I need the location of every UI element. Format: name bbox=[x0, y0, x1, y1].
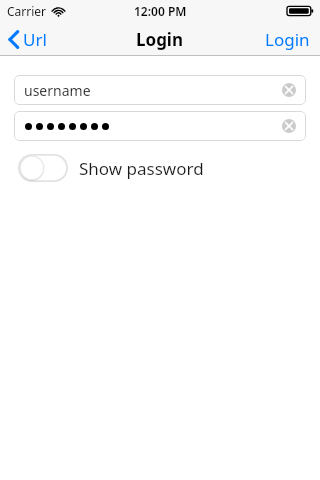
button[interactable]: Login bbox=[255, 22, 320, 56]
button[interactable]: Clear text bbox=[14, 111, 306, 141]
staticText: Show password bbox=[79, 157, 204, 180]
button[interactable]: Clear text bbox=[278, 115, 300, 137]
staticText: 12:00 PM bbox=[134, 3, 187, 19]
button[interactable]: Show password toggle bbox=[0, 152, 320, 184]
staticText: Url bbox=[23, 28, 47, 51]
staticText: Login bbox=[265, 28, 310, 51]
staticText: Carrier bbox=[7, 3, 47, 19]
button[interactable]: Clear text bbox=[278, 79, 300, 101]
staticText: username bbox=[24, 81, 91, 100]
staticText: Login bbox=[136, 28, 184, 51]
button[interactable]: Url bbox=[0, 22, 57, 56]
button[interactable]: username bbox=[14, 75, 306, 105]
other: Show password toggle bbox=[18, 154, 68, 182]
